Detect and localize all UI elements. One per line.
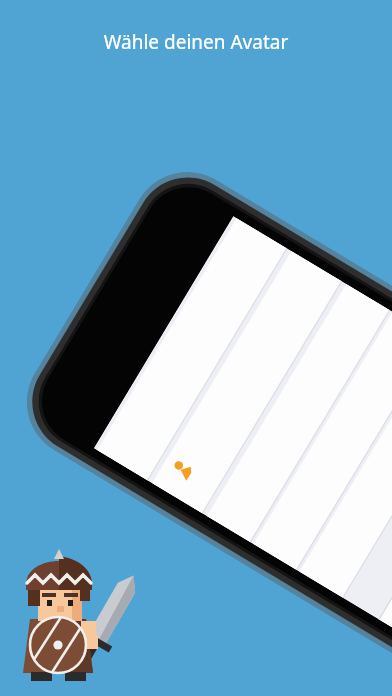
staticText: Wähle deinen Avatar [16, 29, 376, 55]
button[interactable]: App Vorschau auf dem Smartphone [0, 0, 392, 696]
button[interactable]: Wikinger Avatar auswählen [0, 0, 392, 696]
